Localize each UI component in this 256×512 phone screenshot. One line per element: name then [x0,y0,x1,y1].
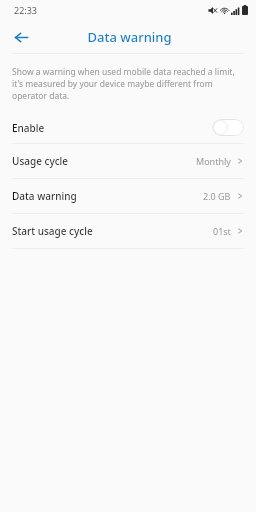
button[interactable]: Back [8,24,34,50]
staticText: 2.0 GB [203,190,231,202]
button[interactable]: Data warning [0,179,256,213]
staticText: Show a warning when used mobile data rea… [12,66,242,102]
staticText: 22:33 [14,4,38,16]
staticText: Monthly [196,155,231,167]
staticText: Usage cycle [12,154,69,168]
button[interactable]: Usage cycle [0,144,256,178]
button[interactable]: Start usage cycle [0,214,256,248]
staticText: 01st [213,225,231,237]
button[interactable]: Enable [0,112,256,143]
staticText: Start usage cycle [12,224,93,238]
staticText: Data warning [12,189,77,203]
staticText: Enable [12,121,45,135]
staticText: Data warning [87,28,172,46]
